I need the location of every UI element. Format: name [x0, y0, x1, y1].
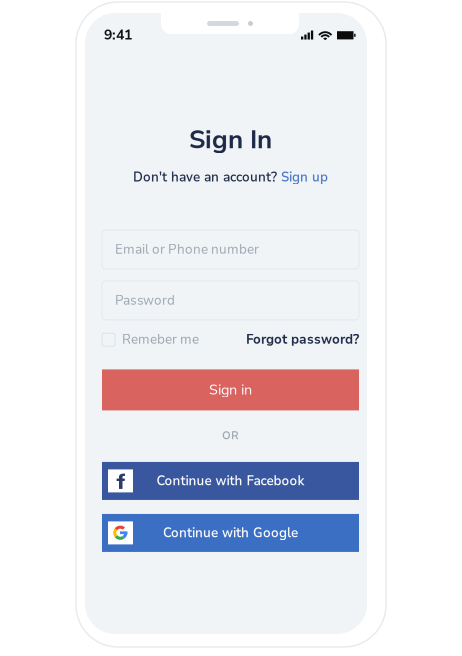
staticText: Continue with Facebook	[156, 472, 304, 490]
staticText: Don't have an account?	[133, 168, 277, 186]
button[interactable]: Continue with Facebook	[102, 462, 359, 500]
staticText: Sign In	[189, 122, 272, 157]
staticText: Remeber me	[122, 331, 199, 348]
staticText: Continue with Google	[163, 524, 298, 542]
staticText: Email or Phone number	[115, 241, 259, 258]
staticText: Sign up	[281, 168, 328, 186]
button[interactable]: Sign in	[102, 369, 359, 410]
staticText: Password	[115, 292, 175, 309]
button[interactable]: Password	[102, 281, 359, 320]
staticText: Sign in	[209, 380, 252, 399]
staticText: OR	[222, 428, 239, 443]
button[interactable]: Continue with Google	[102, 514, 359, 552]
staticText: Forgot password?	[246, 331, 359, 348]
button[interactable]: Remeber me	[102, 331, 199, 348]
button[interactable]: Forgot password?	[246, 331, 359, 348]
button[interactable]: Sign up	[281, 168, 328, 186]
staticText: 9:41	[104, 25, 132, 45]
button[interactable]: Email or Phone number	[102, 230, 359, 269]
